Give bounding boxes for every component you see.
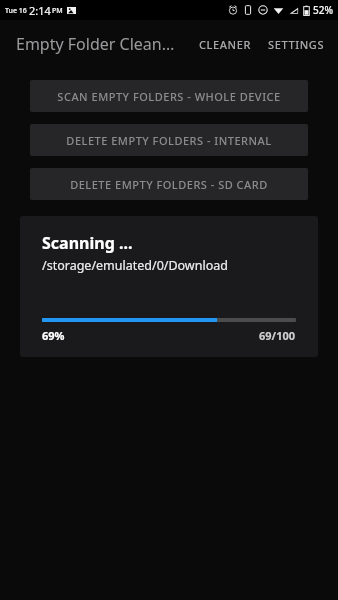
button[interactable]: CLEANER (191, 27, 260, 62)
staticText: DELETE EMPTY FOLDERS - INTERNAL (66, 133, 272, 148)
staticText: Tue 16 (5, 6, 27, 16)
staticText: 69% (42, 328, 65, 343)
button[interactable]: SCAN EMPTY FOLDERS - WHOLE DEVICE (30, 80, 308, 112)
staticText: 52% (313, 3, 333, 17)
staticText: SCAN EMPTY FOLDERS - WHOLE DEVICE (57, 89, 281, 104)
staticText: 69/100 (259, 328, 296, 343)
button[interactable]: SETTINGS (260, 27, 338, 62)
staticText: Scanning ... (42, 232, 133, 254)
staticText: PM (52, 6, 63, 16)
button[interactable]: DELETE EMPTY FOLDERS - INTERNAL (30, 124, 308, 156)
button[interactable]: Scanning ... (20, 216, 318, 357)
staticText: SETTINGS (268, 37, 325, 52)
staticText: 2:14 (29, 3, 51, 18)
staticText: Empty Folder Clean… (16, 33, 175, 55)
staticText: /storage/emulated/0/Download (42, 257, 228, 274)
staticText: CLEANER (199, 37, 252, 52)
button[interactable]: DELETE EMPTY FOLDERS - SD CARD (30, 168, 308, 200)
staticText: DELETE EMPTY FOLDERS - SD CARD (70, 177, 268, 192)
